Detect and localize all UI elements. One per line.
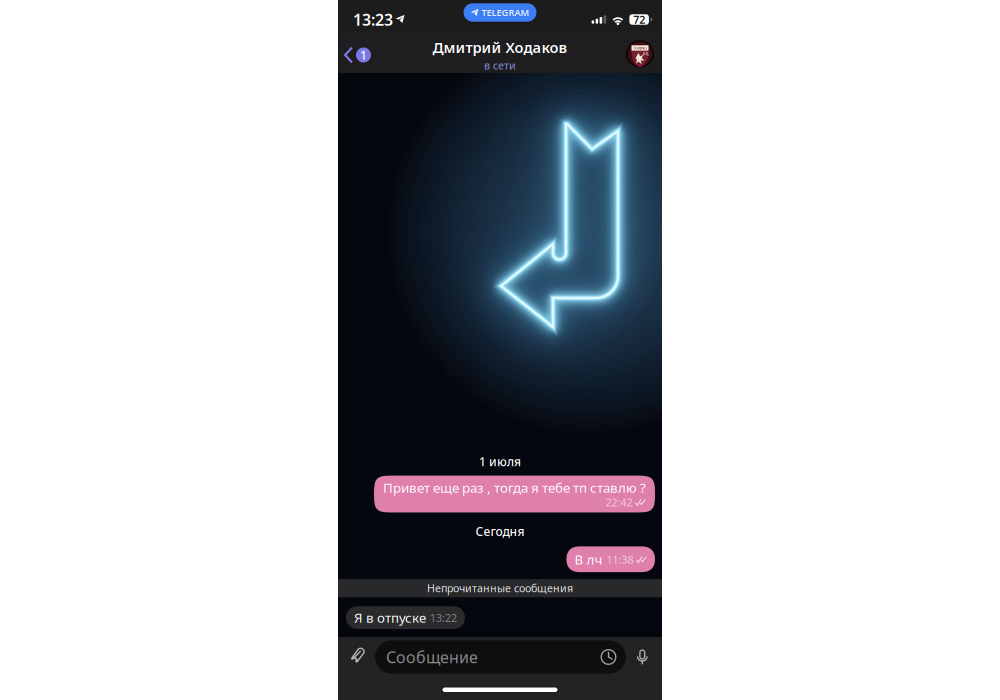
staticText: Сообщение <box>386 646 478 668</box>
staticText: Дмитрий Ходаков <box>432 38 567 57</box>
staticText: в сети <box>484 58 516 72</box>
staticText: TELEGRAM <box>481 6 529 19</box>
staticText: В лч <box>574 550 602 568</box>
staticText: 1 <box>360 47 367 63</box>
button[interactable]: Attach <box>348 647 367 666</box>
button[interactable]: Chat profile <box>618 38 662 66</box>
staticText: Сегодня <box>475 523 524 539</box>
staticText: 1 июля <box>479 454 521 470</box>
staticText: Привет еще раз , тогда я тебе тп ставлю … <box>383 479 646 496</box>
staticText: TORINO <box>633 45 647 51</box>
button[interactable]: Record voice message <box>634 648 651 665</box>
staticText: Я в отпуске <box>354 609 426 626</box>
staticText: Непрочитанные сообщения <box>427 581 573 595</box>
staticText: 13:22 <box>430 611 457 625</box>
staticText: 13:23 <box>353 9 393 30</box>
staticText: FC <box>643 50 649 57</box>
staticText: 72 <box>633 12 645 27</box>
button[interactable]: Back <box>338 35 381 68</box>
staticText: 22:42 <box>605 495 632 509</box>
staticText: 11:38 <box>606 552 633 567</box>
